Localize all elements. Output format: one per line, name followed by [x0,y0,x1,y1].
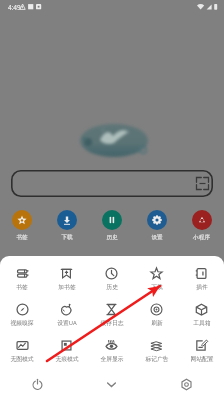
staticText: 小程序 [193,234,210,241]
button[interactable]: 小程序 [179,210,224,241]
button[interactable]: 设置 [134,210,179,241]
staticText: 网站配置 [190,355,214,362]
button[interactable]: 下载 [44,210,89,241]
staticText: 标记广告 [145,355,169,362]
button[interactable]: 历史 [89,261,134,297]
staticText: 加书签 [58,283,76,290]
staticText: 书签 [16,234,28,241]
button[interactable]: 无图模式 [0,333,44,369]
button[interactable]: 设置UA [44,297,89,333]
button[interactable] [11,170,213,197]
staticText: 历史 [106,234,118,241]
button[interactable]: Collapse [74,369,149,400]
staticText: 缓存日志 [100,319,124,326]
staticText: 下载 [61,234,73,241]
staticText: 设置UA [57,319,77,327]
staticText: 历史 [106,283,118,290]
staticText: 下载 [151,283,163,290]
staticText: 设置 [151,234,163,241]
staticText: 无图模式 [10,355,34,362]
button[interactable]: 工具箱 [179,297,224,333]
staticText: 工具箱 [193,319,211,326]
button[interactable]: Exit [0,369,74,400]
button[interactable]: 标记广告 [134,333,179,369]
staticText: 刷新 [151,319,163,326]
button[interactable]: 视频嗅探 [0,297,44,333]
button[interactable]: 历史 [89,210,134,241]
button[interactable]: Settings [149,369,224,400]
button[interactable]: 全屏显示 [89,333,134,369]
button[interactable]: 书签 [0,210,44,241]
staticText: 书签 [16,283,28,290]
button[interactable]: 无痕模式 [44,333,89,369]
button[interactable]: 刷新 [134,297,179,333]
button[interactable]: 网站配置 [179,333,224,369]
staticText: 全屏显示 [100,355,124,362]
button[interactable]: 插件 [179,261,224,297]
button[interactable]: 书签 [0,261,44,297]
staticText: 视频嗅探 [10,319,34,326]
staticText: 无痕模式 [55,355,79,362]
staticText: 4:49 [8,3,21,12]
button[interactable]: 下载 [134,261,179,297]
staticText: 插件 [196,283,208,290]
button[interactable]: 缓存日志 [89,297,134,333]
button[interactable]: 加书签 [44,261,89,297]
button[interactable]: Scan [195,176,210,191]
